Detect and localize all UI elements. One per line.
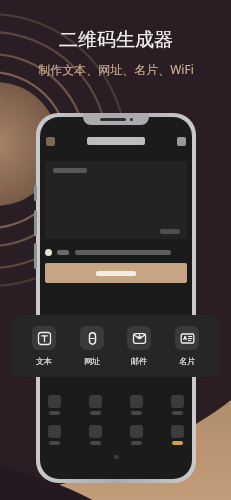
staticText: 二维码生成器 (59, 28, 173, 52)
staticText: 邮件 (131, 356, 147, 366)
staticText: 制作文本、网址、名片、WiFi (38, 61, 194, 77)
staticText: 网址 (84, 356, 100, 366)
button[interactable]: Create email QR code (117, 326, 161, 366)
button[interactable]: Create contact card QR code (165, 326, 209, 366)
button[interactable] (45, 263, 187, 283)
button[interactable]: Create URL QR code (70, 326, 114, 366)
staticText: 文本 (36, 356, 52, 366)
button[interactable]: Create text QR code (22, 326, 66, 366)
staticText: 名片 (179, 356, 195, 366)
